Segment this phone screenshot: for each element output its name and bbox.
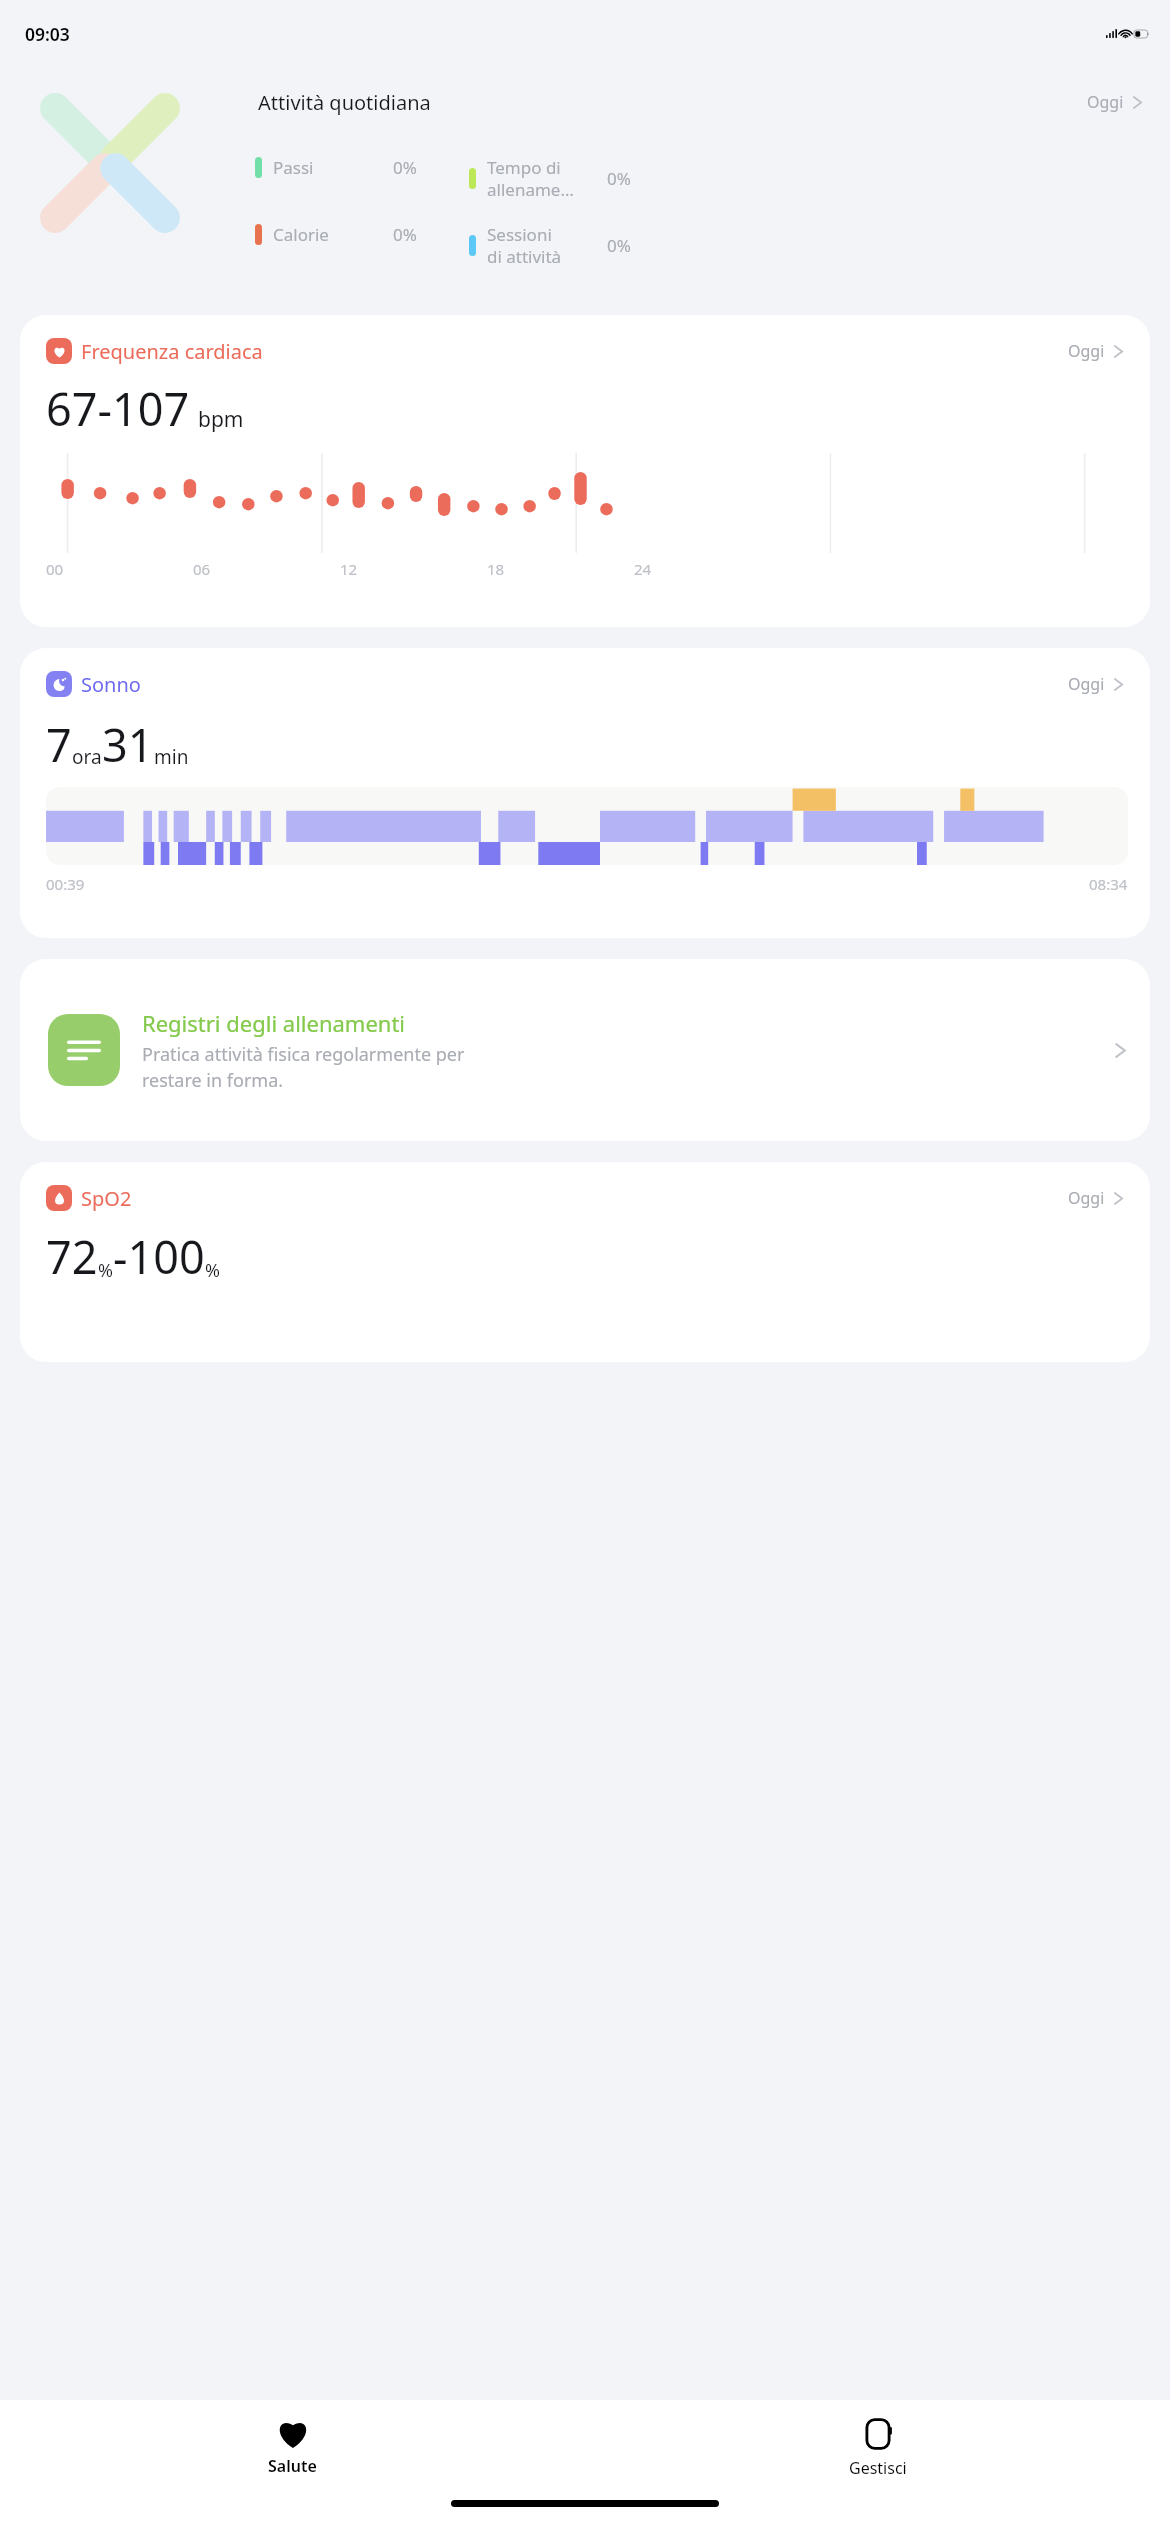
staticText: 08:34	[1089, 874, 1128, 894]
staticText: Oggi	[1087, 91, 1124, 113]
staticText: Calorie	[273, 223, 329, 246]
button[interactable]: Sessioni di attività	[469, 223, 631, 268]
button[interactable]: Tempo di allename…	[469, 156, 631, 201]
button[interactable]: Oggi	[1065, 670, 1128, 698]
staticText: Oggi	[1068, 1187, 1105, 1209]
staticText: 0%	[393, 156, 417, 179]
staticText: %	[98, 1258, 113, 1283]
button[interactable]: Frequenza cardiaca	[20, 315, 1150, 627]
button[interactable]: Registri degli allenamenti	[20, 959, 1150, 1141]
staticText: %	[205, 1258, 220, 1283]
staticText: Salute	[268, 2455, 317, 2477]
button[interactable]: Sonno	[20, 648, 1150, 938]
staticText: -100	[113, 1226, 205, 1287]
button[interactable]: SpO2	[20, 1162, 1150, 1362]
staticText: Tempo di allename…	[487, 156, 574, 201]
staticText: 67-107	[46, 378, 190, 439]
staticText: 0%	[607, 167, 631, 190]
staticText: Attività quotidiana	[258, 89, 431, 116]
button[interactable]: Oggi	[1065, 337, 1128, 365]
staticText: 24	[634, 559, 652, 579]
staticText: Sessioni di attività	[487, 223, 562, 268]
staticText: 00:39	[46, 874, 85, 894]
staticText: Frequenza cardiaca	[81, 338, 263, 365]
button[interactable]: Oggi	[1083, 87, 1148, 117]
staticText: 09:03	[25, 22, 70, 46]
staticText: SpO2	[81, 1185, 132, 1212]
button[interactable]: Passi	[255, 156, 417, 179]
staticText: Pratica attività fisica regolarmente per…	[142, 1042, 465, 1093]
staticText: 0%	[607, 234, 631, 257]
button[interactable]: Salute	[0, 2400, 585, 2500]
staticText: 7	[46, 714, 72, 775]
staticText: 31	[102, 714, 154, 775]
staticText: Gestisci	[849, 2457, 907, 2479]
staticText: Passi	[273, 156, 314, 179]
staticText: ora	[72, 744, 102, 770]
button[interactable]: Oggi	[1065, 1184, 1128, 1212]
button[interactable]: Gestisci	[585, 2400, 1170, 2500]
staticText: Oggi	[1068, 340, 1105, 362]
staticText: min	[154, 744, 189, 770]
staticText: 12	[340, 559, 358, 579]
staticText: 06	[193, 559, 211, 579]
staticText: 18	[487, 559, 505, 579]
staticText: Oggi	[1068, 673, 1105, 695]
staticText: 0%	[393, 223, 417, 246]
staticText: Sonno	[81, 671, 141, 698]
staticText: bpm	[198, 405, 244, 434]
staticText: 72	[46, 1226, 98, 1287]
staticText: 00	[46, 559, 64, 579]
staticText: Registri degli allenamenti	[142, 1008, 406, 1038]
button[interactable]: Calorie	[255, 223, 417, 246]
